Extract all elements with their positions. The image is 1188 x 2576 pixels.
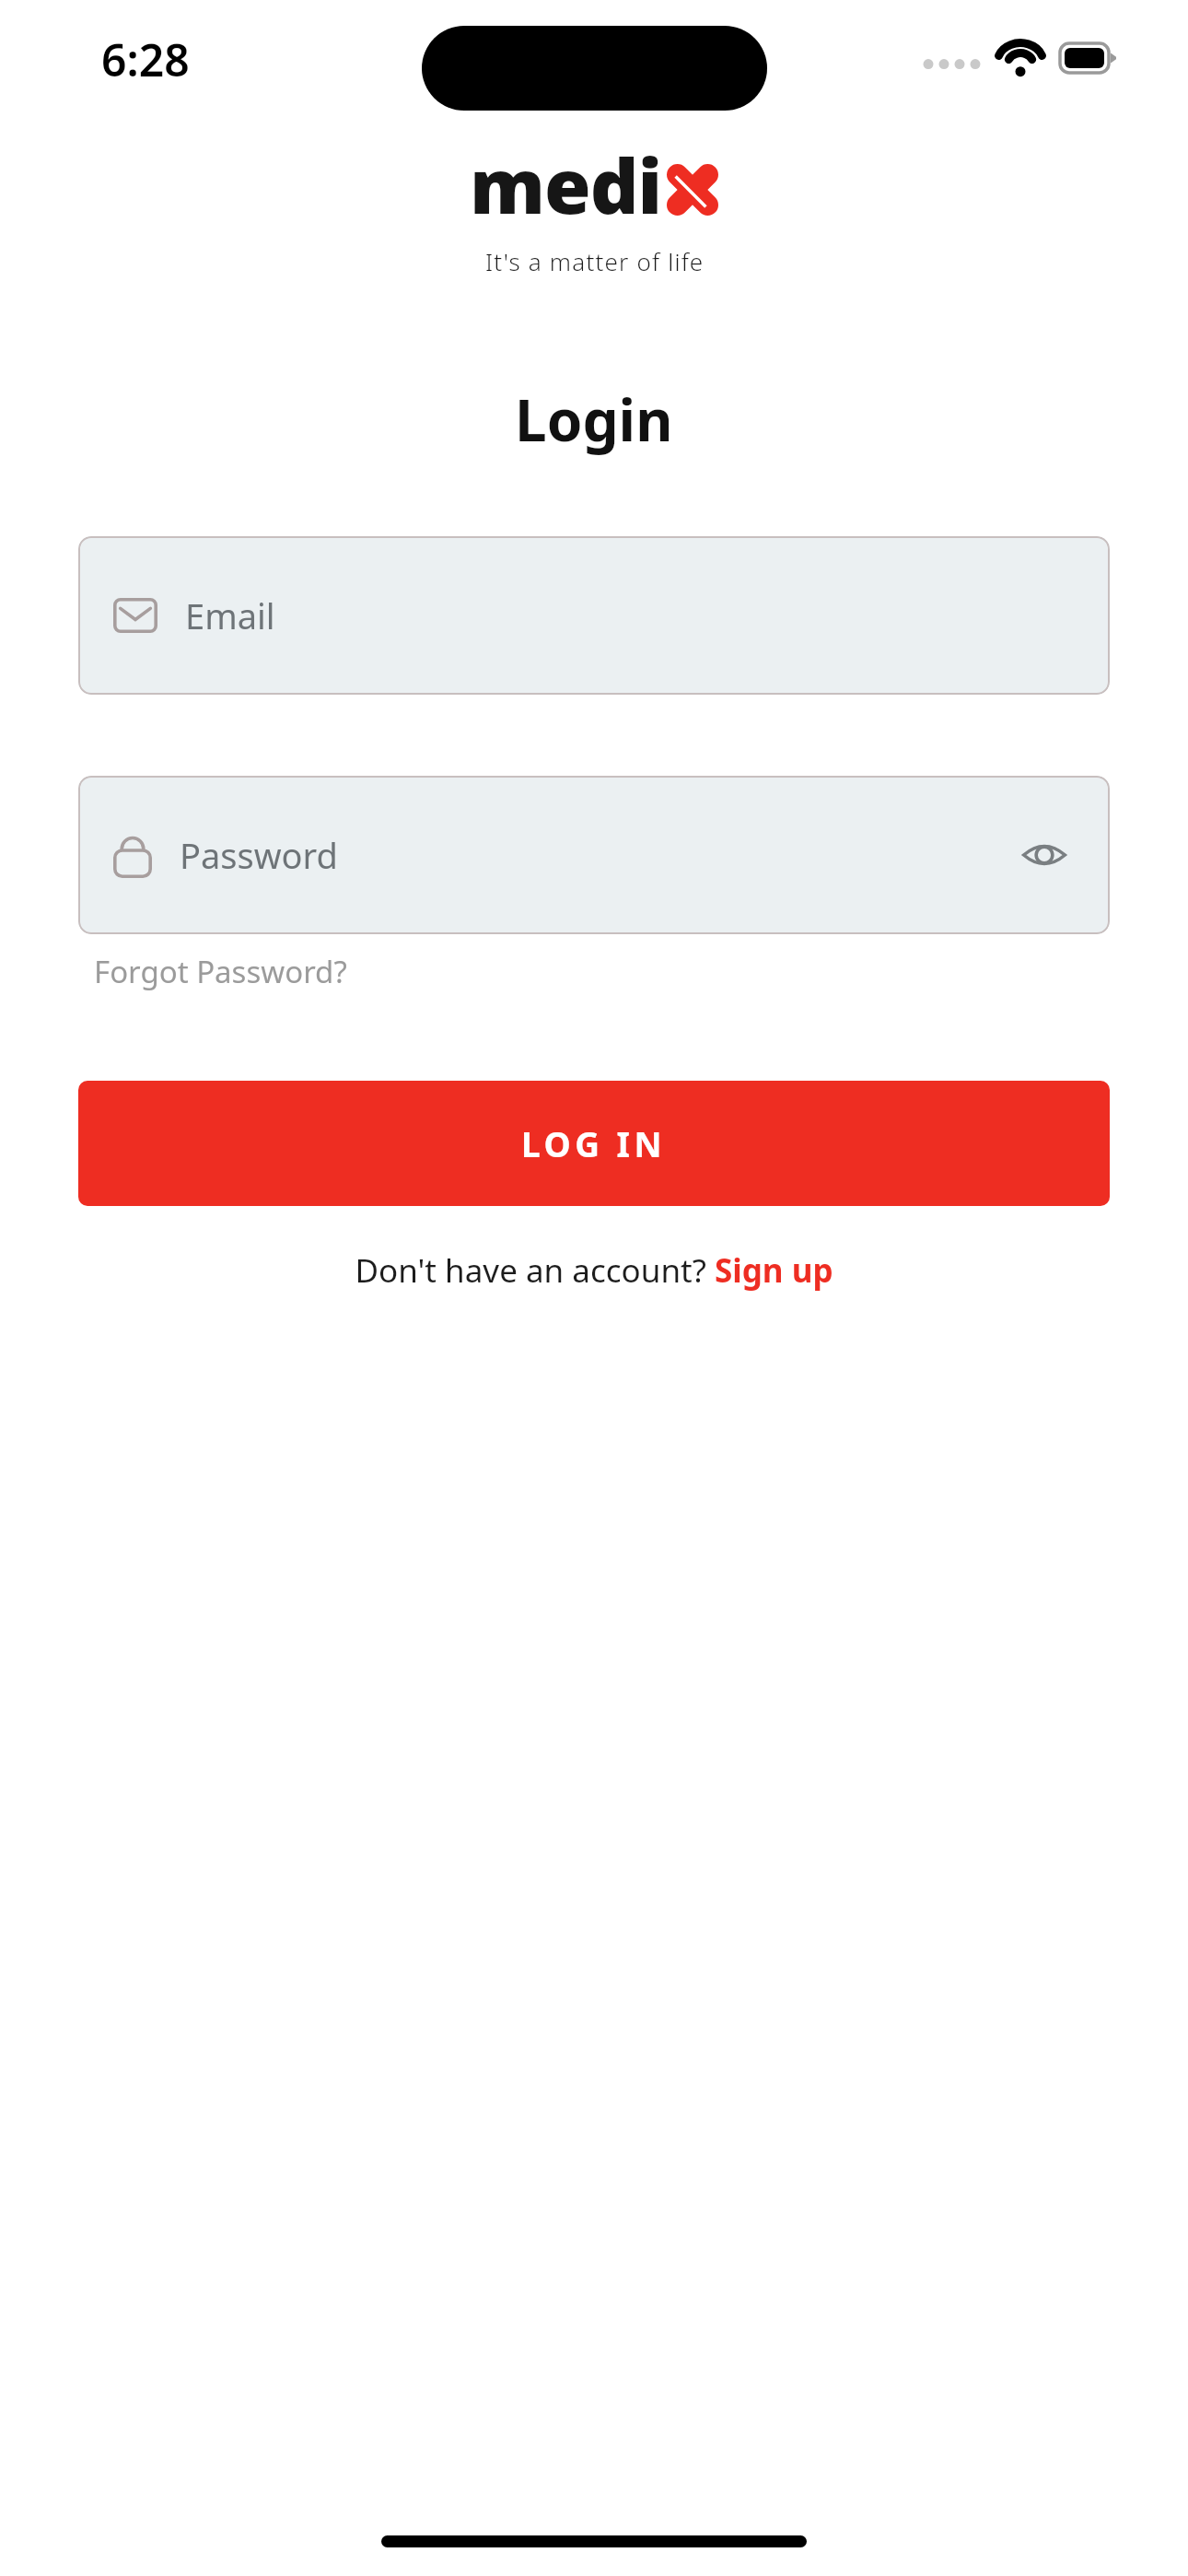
staticText: It's a matter of life bbox=[485, 245, 705, 277]
staticText: Login bbox=[515, 381, 673, 458]
staticText: Don't have an account? Sign up bbox=[355, 1248, 833, 1293]
button[interactable]: Password bbox=[78, 776, 1110, 934]
button[interactable]: Show password bbox=[1014, 825, 1075, 885]
staticText: Forgot Password? bbox=[94, 951, 347, 992]
button[interactable]: LOG IN bbox=[78, 1081, 1110, 1206]
staticText: Email bbox=[185, 591, 1075, 639]
button[interactable]: Don't have an account? Sign up bbox=[349, 1245, 839, 1296]
staticText: Password bbox=[180, 831, 1014, 879]
staticText: 6:28 bbox=[101, 29, 190, 89]
button[interactable]: Email bbox=[78, 536, 1110, 695]
staticText: medi bbox=[470, 133, 662, 236]
button[interactable]: Forgot Password? bbox=[92, 945, 349, 998]
staticText: LOG IN bbox=[521, 1120, 667, 1166]
